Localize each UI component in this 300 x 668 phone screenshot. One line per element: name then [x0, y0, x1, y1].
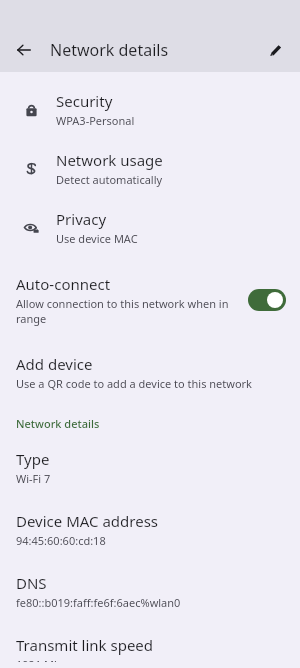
- staticText: Device MAC address: [16, 511, 159, 531]
- button[interactable]: Transmit link speed: [0, 629, 300, 668]
- staticText: Allow connection to this network when in…: [16, 296, 238, 326]
- button[interactable]: Privacy: [0, 198, 300, 257]
- staticText: Use device MAC: [56, 231, 138, 246]
- staticText: Network usage: [56, 150, 163, 170]
- staticText: WPA3-Personal: [56, 113, 135, 128]
- staticText: fe80::b019:faff:fe6f:6aec%wlan0: [16, 595, 181, 610]
- button[interactable]: Type: [0, 443, 300, 492]
- staticText: Type: [16, 449, 50, 469]
- button[interactable]: Back: [6, 32, 42, 68]
- other: Privacy: [14, 219, 48, 236]
- other: Security: [14, 101, 48, 118]
- staticText: Auto-connect: [16, 274, 111, 294]
- staticText: 1921 Mbps: [16, 657, 73, 662]
- button[interactable]: DNS: [0, 567, 300, 616]
- button[interactable]: Network usage: [0, 139, 300, 198]
- staticText: Use a QR code to add a device to this ne…: [16, 376, 252, 391]
- staticText: DNS: [16, 573, 47, 593]
- staticText: Transmit link speed: [16, 635, 154, 655]
- staticText: Detect automatically: [56, 172, 163, 187]
- staticText: 94:45:60:60:cd:18: [16, 533, 106, 548]
- other: Network usage: [14, 160, 48, 177]
- button[interactable]: Add device: [0, 343, 300, 402]
- button[interactable]: Auto-connect: [0, 263, 300, 337]
- staticText: Wi-Fi 7: [16, 471, 51, 486]
- staticText: Network details: [16, 416, 100, 431]
- staticText: Security: [56, 91, 113, 111]
- button[interactable]: Device MAC address: [0, 505, 300, 554]
- button[interactable]: Edit: [259, 33, 293, 67]
- button[interactable]: Security: [0, 80, 300, 139]
- staticText: Privacy: [56, 209, 107, 229]
- staticText: Network details: [50, 39, 169, 61]
- staticText: Add device: [16, 354, 93, 374]
- other: Auto-connect toggle: [248, 289, 286, 311]
